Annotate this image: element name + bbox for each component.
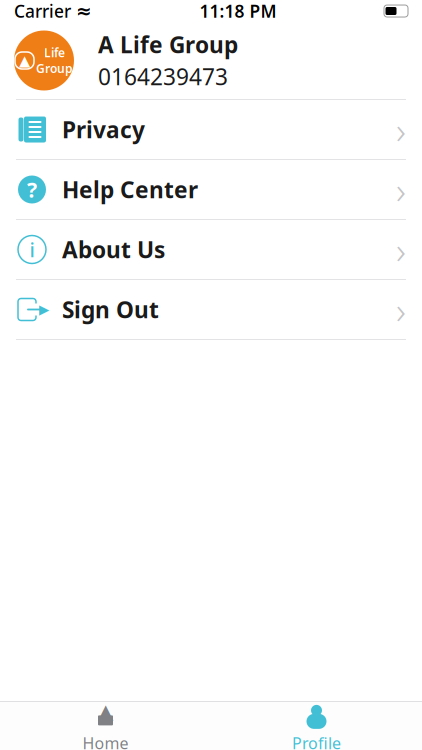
staticText: ▲ (98, 700, 113, 723)
button[interactable]: Profile (211, 698, 422, 750)
button[interactable]: ▶ (0, 280, 422, 340)
staticText: ▲ (19, 52, 30, 69)
staticText: Life (44, 45, 65, 60)
staticText: Privacy (62, 114, 145, 144)
staticText: › (396, 105, 406, 154)
staticText: › (396, 165, 406, 214)
staticText: i (29, 236, 34, 263)
button[interactable]: ? (0, 160, 422, 220)
staticText: ▶ (39, 302, 49, 317)
staticText: 0164239473 (98, 61, 228, 92)
staticText: › (396, 225, 406, 274)
staticText: Help Center (62, 174, 198, 204)
staticText: ? (27, 175, 37, 204)
staticText: Home (82, 732, 128, 750)
staticText: Group (36, 60, 73, 76)
staticText: Sign Out (62, 294, 159, 324)
staticText: › (396, 285, 406, 334)
staticText: Profile (292, 732, 341, 750)
button[interactable]: i (0, 220, 422, 280)
staticText: ≈ (76, 0, 92, 22)
button[interactable]: ▲ (0, 698, 211, 750)
staticText: About Us (62, 234, 165, 264)
staticText: Carrier (14, 0, 71, 22)
staticText: 11:18 PM (199, 0, 276, 22)
staticText: A Life Group (98, 29, 238, 59)
button[interactable]: Privacy (0, 100, 422, 160)
